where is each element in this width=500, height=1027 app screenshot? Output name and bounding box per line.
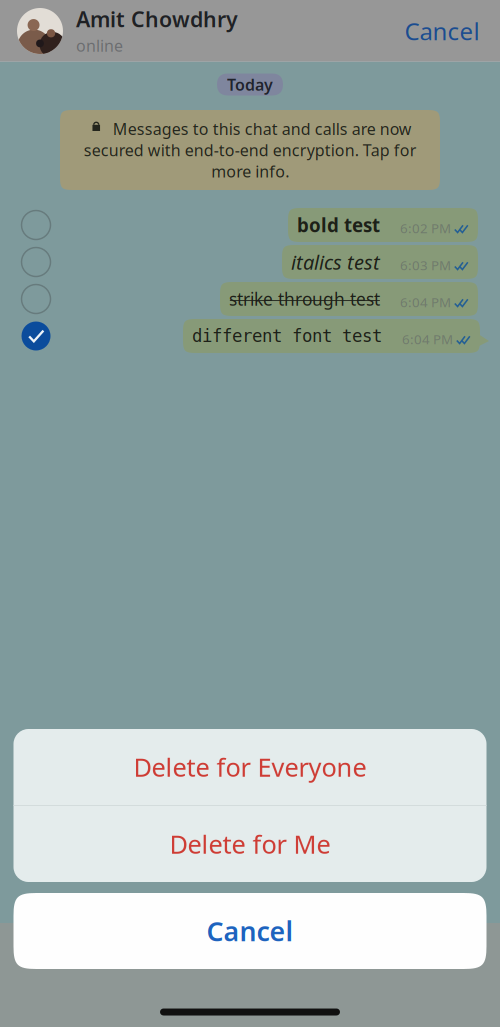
staticText: bold test (297, 213, 380, 237)
staticText: Amit Chowdhry (76, 5, 238, 33)
staticText: Delete for Everyone (133, 750, 366, 784)
staticText: online (76, 35, 123, 56)
button[interactable]: Select message (0, 282, 71, 316)
button[interactable]: Deselect message (0, 319, 71, 353)
staticText: different font test (192, 326, 382, 346)
staticText: Messages to this chat and calls are now … (83, 118, 416, 182)
staticText: Delete for Me (169, 827, 330, 861)
button[interactable]: Cancel (390, 0, 493, 62)
staticText: 6:04 PM (400, 293, 451, 311)
button[interactable]: Cancel (13, 893, 486, 969)
staticText: Cancel (404, 15, 479, 47)
button[interactable]: Select message (0, 208, 71, 242)
staticText: 6:04 PM (402, 330, 453, 348)
staticText: Cancel (206, 913, 293, 949)
staticText: strike through test (229, 287, 380, 310)
button[interactable]: Messages to this chat and calls are now … (60, 110, 440, 190)
button[interactable]: Amit Chowdhry (0, 0, 238, 62)
button[interactable]: Select message (0, 245, 71, 279)
staticText: italics test (291, 249, 380, 275)
button[interactable]: Delete for Me (13, 806, 486, 882)
staticText: Today (227, 74, 273, 95)
button[interactable]: Delete for Everyone (13, 729, 486, 805)
staticText: 6:02 PM (400, 219, 451, 237)
staticText: 6:03 PM (400, 256, 451, 274)
